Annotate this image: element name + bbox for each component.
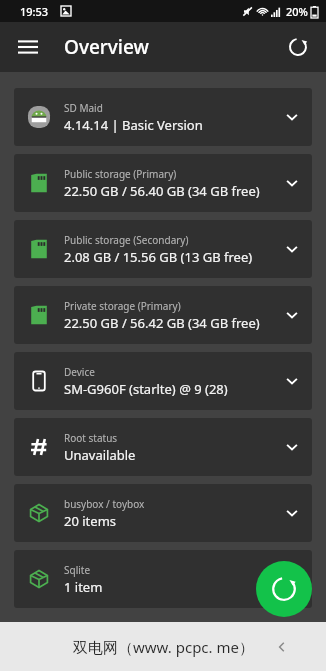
staticText: 20% [286,4,308,19]
button[interactable]: Open navigation menu [8,27,48,67]
staticText: Sqlite [64,563,91,577]
button[interactable]: Expand [272,286,312,344]
staticText: Private storage (Primary) [64,299,181,313]
staticText: Public storage (Primary) [64,167,177,181]
button[interactable]: Root status [14,418,312,476]
button[interactable]: Expand [272,352,312,410]
staticText: SD Maid [64,101,103,115]
button[interactable]: Device [14,352,312,410]
staticText: Public storage (Secondary) [64,233,189,247]
button[interactable]: Sqlite [14,550,312,608]
staticText: Root status [64,431,118,445]
staticText: 20 items [64,512,117,530]
staticText: SM-G960F (starlte) @ 9 (28) [64,380,228,398]
staticText: Device [64,365,95,379]
staticText: Overview [64,34,149,60]
staticText: busybox / toybox [64,497,145,511]
button[interactable]: Expand [272,484,312,542]
staticText: 4.14.14 | Basic Version [64,116,203,134]
staticText: 22.50 GB / 56.40 GB (34 GB free) [64,182,260,200]
staticText: 22.50 GB / 56.42 GB (34 GB free) [64,314,260,332]
button[interactable]: Expand [272,154,312,212]
staticText: 双电网（www. pcpc. me） [73,637,254,657]
staticText: 2.08 GB / 15.56 GB (13 GB free) [64,248,253,266]
button[interactable]: busybox / toybox [14,484,312,542]
button[interactable]: SD Maid [14,88,312,146]
button[interactable]: Public storage (Primary) [14,154,312,212]
button[interactable]: Expand [272,88,312,146]
button[interactable]: Public storage (Secondary) [14,220,312,278]
button[interactable]: Refresh [278,27,318,67]
button[interactable]: Private storage (Primary) [14,286,312,344]
staticText: Unavailable [64,446,136,464]
staticText: 19:53 [20,4,49,19]
button[interactable]: Expand [272,418,312,476]
button[interactable]: Expand [272,220,312,278]
button[interactable]: Expand [272,550,312,608]
button[interactable]: Refresh [256,561,312,617]
staticText: 1 item [64,578,103,596]
